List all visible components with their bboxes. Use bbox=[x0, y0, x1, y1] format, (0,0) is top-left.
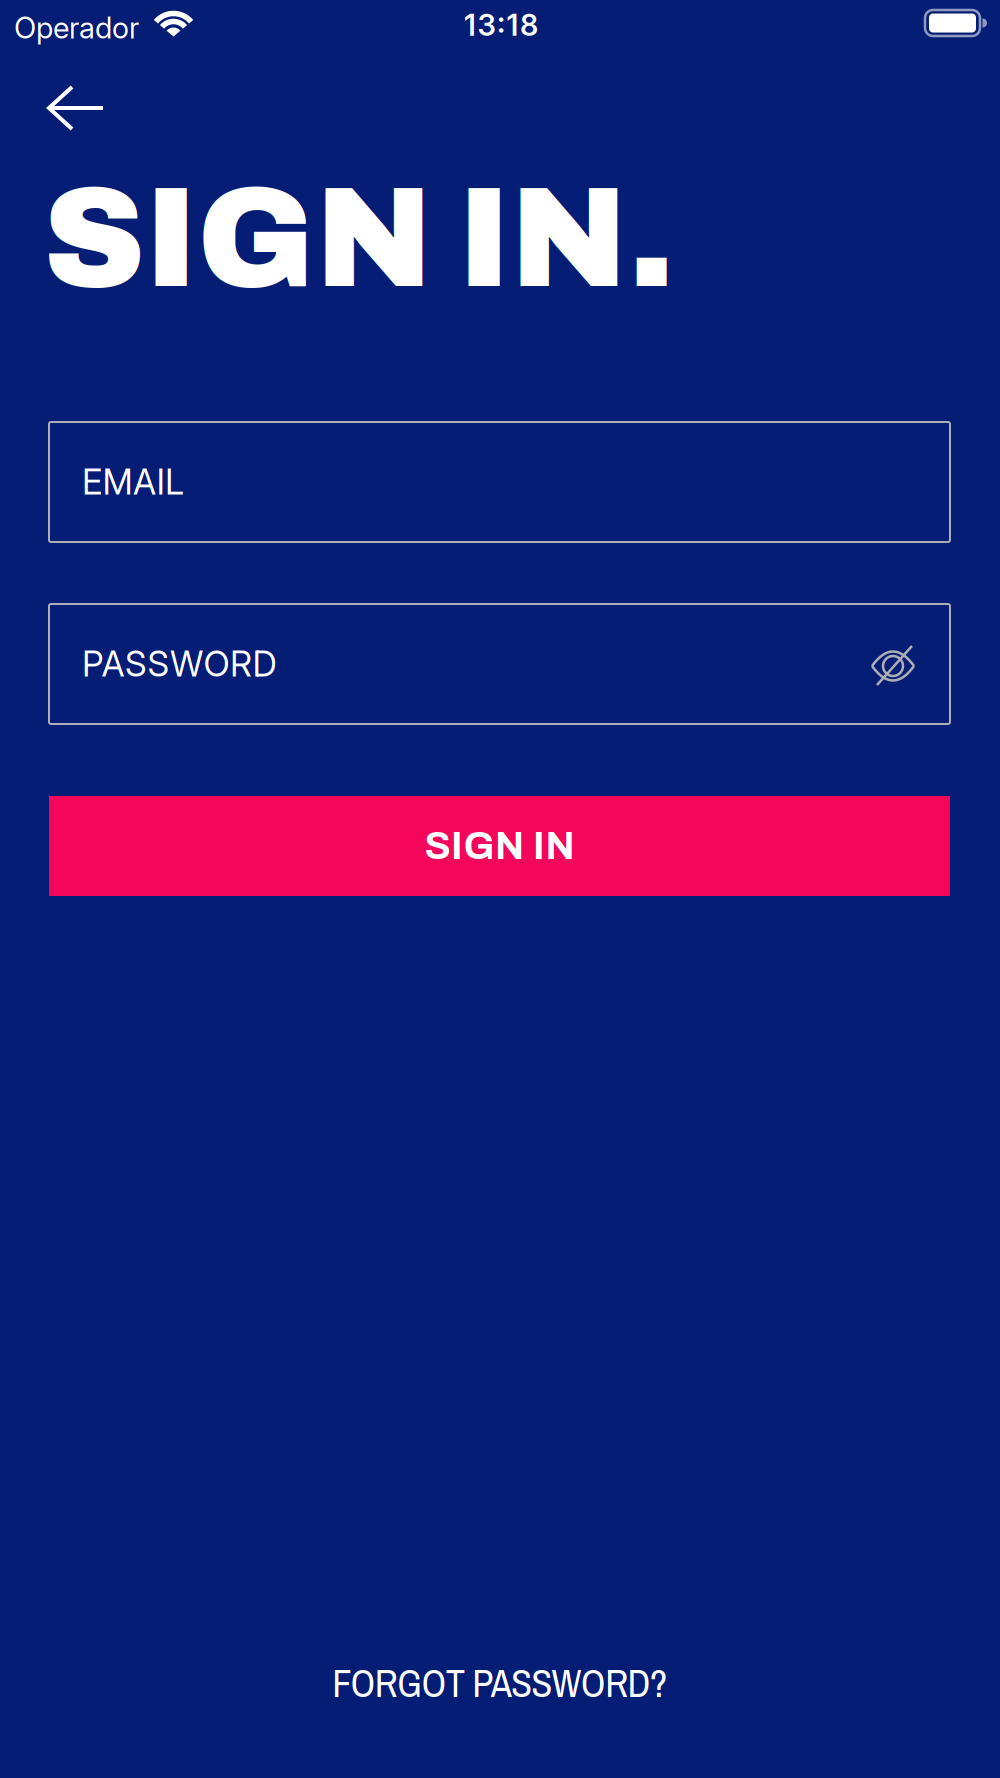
staticText: SIGN IN bbox=[424, 825, 574, 867]
button[interactable]: SIGN IN bbox=[49, 796, 950, 896]
staticText: Operador bbox=[14, 10, 139, 45]
staticText: SIGN IN. bbox=[43, 162, 675, 316]
staticText: 13:18 bbox=[464, 7, 538, 43]
staticText: EMAIL bbox=[82, 461, 184, 503]
staticText: FORGOT PASSWORD? bbox=[332, 1657, 668, 1709]
button[interactable]: Email bbox=[49, 422, 950, 542]
button[interactable]: Back bbox=[33, 71, 119, 145]
button[interactable]: Show password bbox=[863, 634, 923, 694]
button[interactable]: Password bbox=[49, 604, 950, 724]
button[interactable]: FORGOT PASSWORD? bbox=[332, 1657, 668, 1709]
staticText: PASSWORD bbox=[82, 643, 276, 685]
